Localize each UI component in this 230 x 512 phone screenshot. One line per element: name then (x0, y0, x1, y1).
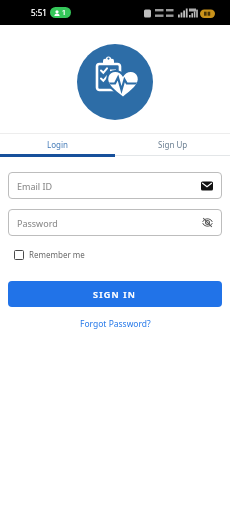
staticText: 5:51 (31, 7, 47, 18)
button[interactable]: Forgot Password? (76, 314, 155, 334)
staticText: 1 (62, 8, 67, 18)
button[interactable]: Email ID (8, 172, 222, 199)
button[interactable]: Password (8, 209, 222, 236)
button[interactable]: Sign Up (115, 134, 230, 154)
button[interactable]: Remember me (14, 249, 85, 260)
staticText: Email ID (17, 180, 53, 192)
staticText: Remember me (29, 249, 85, 260)
staticText: Sign Up (158, 139, 188, 150)
staticText: Login (47, 139, 68, 150)
button[interactable]: SIGN IN (8, 281, 222, 307)
staticText: Password (17, 217, 58, 229)
staticText: SIGN IN (93, 288, 137, 300)
button[interactable]: Login (0, 134, 115, 154)
staticText: Forgot Password? (80, 318, 151, 330)
